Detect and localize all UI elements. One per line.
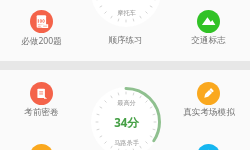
button[interactable]: 真实考场模拟 — [167, 82, 250, 118]
button[interactable]: 交通标志 — [167, 10, 250, 46]
staticText: 34分 — [114, 115, 139, 131]
button[interactable]: 考前密卷 — [0, 82, 83, 118]
button[interactable] — [167, 144, 250, 150]
button[interactable]: 摩托车 — [91, 0, 161, 27]
staticText: 顺序练习 — [108, 35, 143, 46]
button[interactable]: 必做200题 — [0, 10, 83, 47]
staticText: 摩托车 — [117, 9, 136, 17]
button[interactable]: 顺序练习 — [84, 10, 167, 46]
staticText: 马路杀手 — [114, 139, 139, 147]
button[interactable]: 最高分 — [91, 87, 161, 150]
staticText: 交通标志 — [191, 35, 226, 46]
staticText: 真实考场模拟 — [183, 107, 235, 118]
button[interactable] — [0, 144, 83, 150]
staticText: 最高分 — [117, 99, 136, 107]
staticText: 考前密卷 — [24, 107, 59, 118]
staticText: 必做200题 — [21, 35, 62, 47]
